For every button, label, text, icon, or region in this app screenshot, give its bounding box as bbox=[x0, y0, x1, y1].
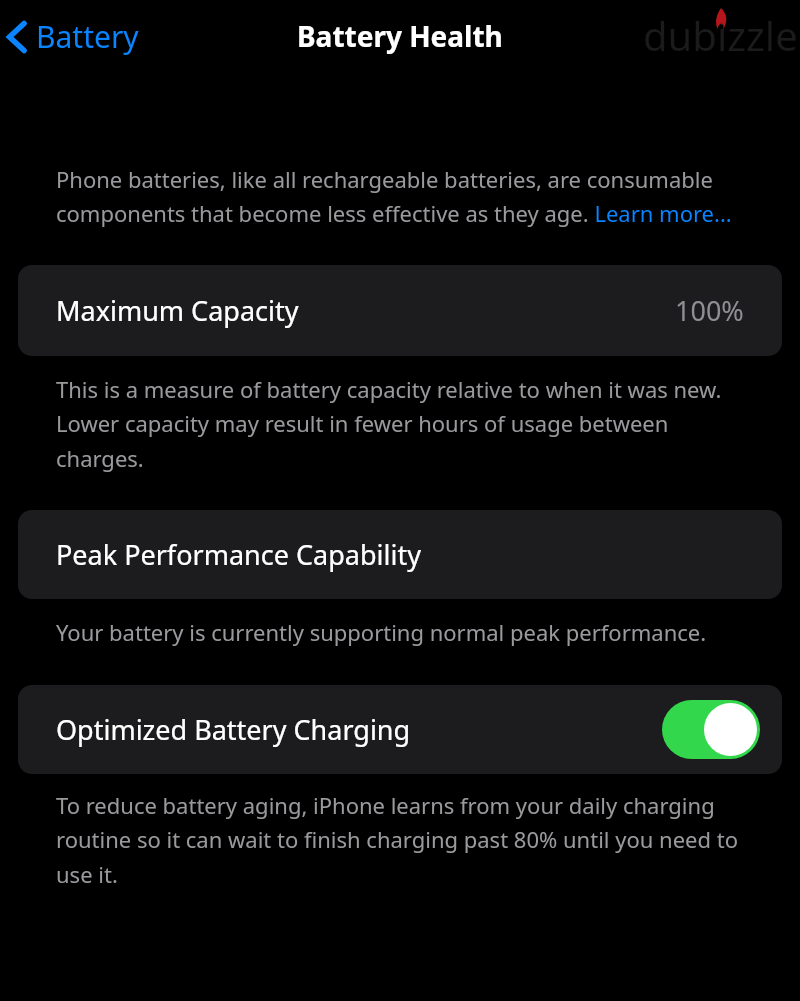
staticText: Phone batteries, like all rechargeable b… bbox=[56, 164, 760, 229]
button[interactable]: Back bbox=[0, 10, 151, 63]
staticText: 100% bbox=[675, 292, 744, 329]
button[interactable]: Optimized Battery Charging toggle, on bbox=[662, 700, 760, 759]
button[interactable]: Maximum Capacity bbox=[18, 265, 782, 356]
staticText: This is a measure of battery capacity re… bbox=[56, 374, 760, 474]
staticText: Optimized Battery Charging bbox=[56, 711, 411, 748]
other: Back bbox=[6, 20, 28, 54]
staticText: Peak Performance Capability bbox=[56, 536, 421, 573]
staticText: Battery Health bbox=[297, 17, 503, 55]
staticText: Maximum Capacity bbox=[56, 292, 299, 329]
staticText: dubizzle bbox=[643, 8, 798, 62]
staticText: To reduce battery aging, iPhone learns f… bbox=[56, 790, 760, 890]
button[interactable]: Optimized Battery Charging bbox=[18, 685, 782, 774]
button[interactable]: Peak Performance Capability bbox=[18, 510, 782, 599]
staticText: Battery bbox=[36, 16, 139, 57]
staticText: Your battery is currently supporting nor… bbox=[56, 617, 760, 647]
